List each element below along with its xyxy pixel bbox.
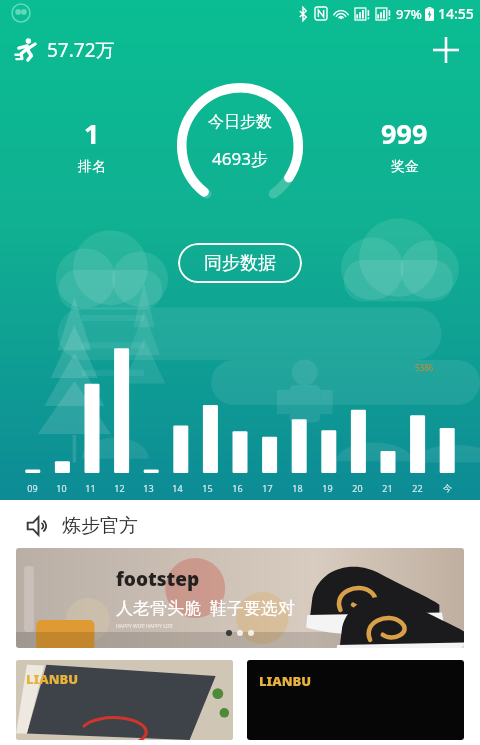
button[interactable]: 1 [78,115,106,176]
staticText: 12 [114,482,125,494]
staticText: 4693步 [212,147,268,170]
staticText: 14:55 [438,4,474,23]
staticText: 人老骨头脆 鞋子要选对 [116,596,295,619]
button[interactable]: LIANBU [247,660,464,740]
staticText: 今日步数 [208,112,272,132]
staticText: 17 [262,482,273,494]
staticText: 57.72万 [47,37,115,63]
staticText: 20 [352,482,363,494]
staticText: 19 [322,482,333,494]
staticText: 18 [292,482,303,494]
staticText: 10 [56,482,67,494]
staticText: 11 [85,482,96,494]
button[interactable]: footstep [16,548,464,648]
staticText: 奖金 [391,158,419,176]
staticText: 15 [202,482,213,494]
staticText: 今 [443,482,452,493]
staticText: 999 [381,115,428,152]
other: Announcement [26,514,50,538]
button[interactable] [0,300,480,500]
staticText: 14 [172,482,183,494]
staticText: footstep [116,566,200,592]
staticText: LIANBU [259,672,312,690]
button[interactable]: 57.72万 [14,37,115,63]
button[interactable]: 同步数据 [178,243,302,283]
button[interactable]: 今日步数 [176,82,304,206]
staticText: 21 [382,482,393,494]
staticText: 炼步官方 [62,514,138,538]
staticText: 排名 [78,158,106,176]
staticText: 16 [232,482,243,494]
button[interactable]: Add [426,30,466,70]
staticText: 22 [412,482,423,494]
staticText: 97% [396,5,422,23]
staticText: LIANBU [26,670,79,688]
staticText: 5386 [415,362,434,373]
button[interactable]: 999 [381,115,428,176]
staticText: HAPPY WIFE HAPPY LIFE [116,623,173,630]
staticText: 1 [84,115,100,152]
button[interactable]: Announcement [26,514,480,538]
button[interactable]: LIANBU [16,660,233,740]
staticText: 13 [143,482,154,494]
staticText: 同步数据 [204,252,276,275]
staticText: 09 [27,482,38,494]
